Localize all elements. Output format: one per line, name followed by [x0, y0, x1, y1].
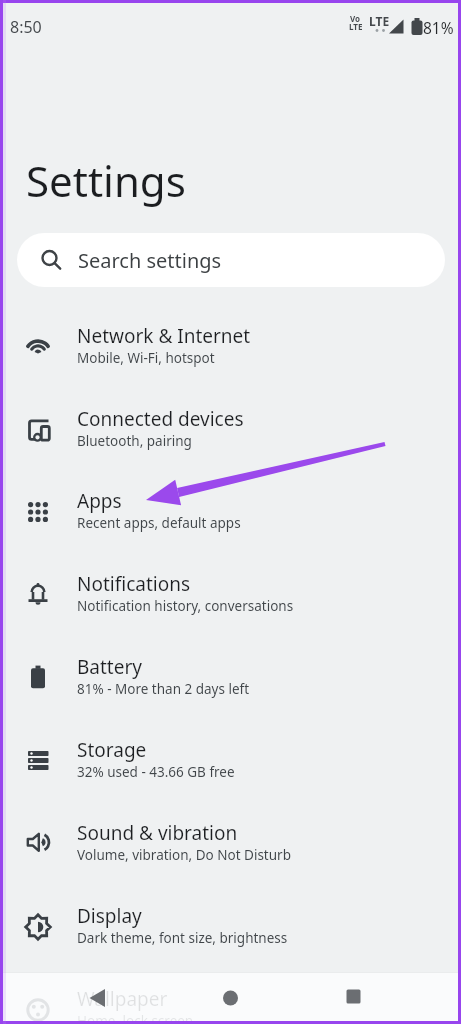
- staticText: LTE: [369, 13, 390, 29]
- staticText: 8:50: [10, 16, 42, 38]
- staticText: Wallpaper: [77, 986, 168, 1012]
- button[interactable]: Apps: [0, 471, 461, 554]
- button[interactable]: Search settings: [17, 233, 445, 287]
- button[interactable]: Network & Internet: [0, 306, 461, 389]
- staticText: Search settings: [78, 247, 222, 274]
- staticText: Display: [77, 903, 142, 929]
- button[interactable]: Wallpaper: [0, 969, 461, 1024]
- staticText: 32% used - 43.66 GB free: [77, 763, 235, 781]
- button[interactable]: Sound & vibration: [0, 803, 461, 886]
- staticText: Battery: [77, 654, 142, 680]
- button[interactable]: Connected devices: [0, 389, 461, 472]
- staticText: Apps: [77, 488, 122, 514]
- staticText: Vo: [350, 13, 361, 24]
- staticText: Network & Internet: [77, 323, 251, 349]
- button[interactable]: [306, 972, 458, 1021]
- button[interactable]: Storage: [0, 720, 461, 803]
- button[interactable]: [3, 972, 154, 1021]
- staticText: Sound & vibration: [77, 820, 238, 846]
- button[interactable]: Display: [0, 886, 461, 969]
- staticText: Notifications: [77, 571, 191, 597]
- button[interactable]: [154, 972, 306, 1021]
- staticText: Recent apps, default apps: [77, 514, 241, 532]
- button[interactable]: Battery: [0, 637, 461, 720]
- staticText: LTE: [349, 21, 363, 32]
- staticText: Dark theme, font size, brightness: [77, 929, 288, 947]
- staticText: 81% - More than 2 days left: [77, 680, 250, 698]
- staticText: Connected devices: [77, 406, 244, 432]
- staticText: Storage: [77, 737, 147, 763]
- staticText: Home, lock screen: [77, 1012, 194, 1024]
- staticText: Bluetooth, pairing: [77, 432, 192, 450]
- staticText: 81%: [423, 17, 454, 38]
- button[interactable]: Notifications: [0, 554, 461, 637]
- staticText: Notification history, conversations: [77, 597, 294, 615]
- staticText: Settings: [26, 152, 186, 209]
- staticText: Mobile, Wi-Fi, hotspot: [77, 349, 215, 367]
- staticText: Volume, vibration, Do Not Disturb: [77, 846, 291, 864]
